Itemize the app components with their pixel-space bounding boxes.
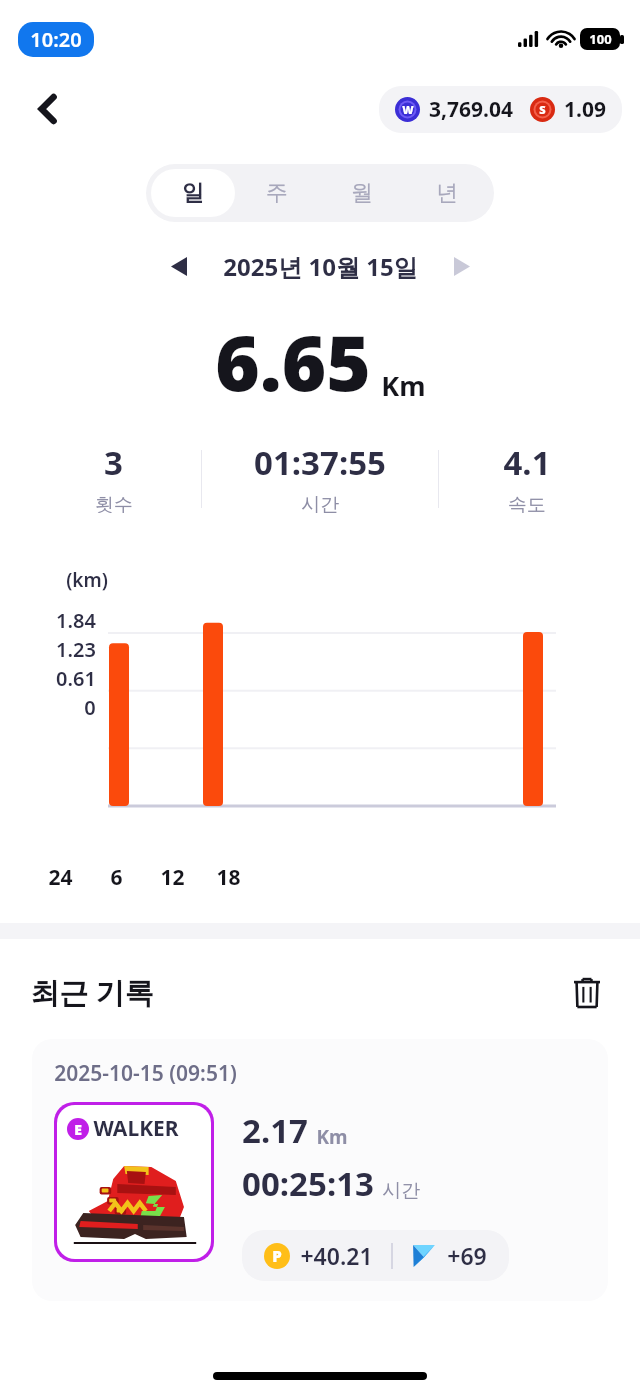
staticText: E — [74, 1120, 82, 1139]
staticText: 1.09 — [564, 95, 606, 124]
staticText: 최근 기록 — [30, 972, 154, 1012]
staticText: 00:25:13 — [242, 1161, 374, 1206]
staticText: S — [539, 102, 546, 117]
staticText: 1.84 — [56, 607, 96, 634]
button[interactable]: 월 — [319, 169, 404, 217]
staticText: 3 — [104, 440, 123, 485]
staticText: 18 — [216, 863, 241, 892]
staticText: 년 — [436, 179, 458, 207]
staticText: Km — [316, 1124, 348, 1150]
button[interactable]: 주 — [235, 169, 319, 217]
staticText: 2.17 — [242, 1108, 308, 1153]
staticText: 시간 — [301, 493, 339, 517]
staticText: P — [272, 1246, 282, 1266]
staticText: 6.65 — [215, 310, 371, 414]
staticText: 100 — [589, 30, 612, 48]
staticText: 일 — [182, 179, 204, 207]
staticText: 1.23 — [56, 636, 96, 663]
staticText: 속도 — [508, 493, 546, 517]
button[interactable]: 일 — [151, 169, 235, 217]
staticText: 3,769.04 — [429, 95, 513, 124]
button[interactable]: W — [379, 86, 622, 133]
staticText: 01:37:55 — [254, 440, 386, 485]
staticText: 횟수 — [95, 493, 133, 517]
staticText: (km) — [66, 567, 108, 593]
staticText: +69 — [447, 1240, 487, 1271]
staticText: 2025-10-15 (09:51) — [54, 1059, 237, 1088]
button[interactable]: P — [242, 1230, 509, 1281]
staticText: WALKER — [93, 1114, 179, 1143]
button[interactable]: 2025-10-15 (09:51) — [32, 1039, 608, 1301]
staticText: 10:20 — [30, 26, 82, 53]
button[interactable]: Previous day — [157, 244, 201, 288]
button[interactable]: Delete records — [564, 969, 610, 1015]
staticText: 시간 — [382, 1179, 420, 1203]
button[interactable]: Next day — [440, 244, 484, 288]
staticText: 주 — [266, 179, 288, 207]
staticText: 6 — [110, 863, 123, 892]
button[interactable]: Back — [24, 85, 72, 133]
staticText: 24 — [48, 863, 73, 892]
staticText: Km — [381, 367, 426, 404]
staticText: 0.61 — [56, 665, 96, 692]
staticText: 4.1 — [503, 440, 551, 485]
staticText: +40.21 — [300, 1240, 373, 1271]
staticText: 월 — [351, 179, 373, 207]
button[interactable]: 년 — [404, 169, 489, 217]
staticText: 2025년 10월 15일 — [223, 250, 418, 283]
staticText: W — [402, 102, 414, 117]
staticText: 12 — [160, 863, 185, 892]
staticText: 0 — [84, 694, 96, 721]
